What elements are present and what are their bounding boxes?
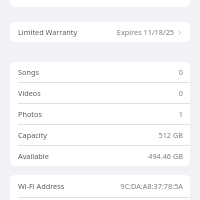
staticText: 512 GB <box>158 130 183 140</box>
staticText: 9C:DA:A8:37:78:5A <box>120 181 183 191</box>
other: More details <box>176 29 183 36</box>
staticText: Limited Warranty <box>18 27 78 37</box>
button[interactable]: Wi-Fi Address <box>10 175 190 197</box>
staticText: Expires 11/18/25 <box>116 27 174 37</box>
button[interactable]: Songs <box>10 62 190 82</box>
staticText: Wi-Fi Address <box>18 181 65 191</box>
button[interactable]: Available <box>10 146 190 166</box>
staticText: Videos <box>18 88 41 98</box>
button[interactable]: Limited Warranty <box>10 22 190 42</box>
staticText: 494.46 GB <box>148 151 183 161</box>
staticText: 0 <box>178 67 183 77</box>
button[interactable]: Capacity <box>10 125 190 145</box>
staticText: Photos <box>18 109 42 119</box>
button[interactable]: Videos <box>10 83 190 103</box>
staticText: Available <box>18 151 49 161</box>
staticText: 1 <box>178 109 183 119</box>
staticText: Capacity <box>18 130 48 140</box>
staticText: 0 <box>178 88 183 98</box>
staticText: Songs <box>18 67 39 77</box>
button[interactable]: Photos <box>10 104 190 124</box>
